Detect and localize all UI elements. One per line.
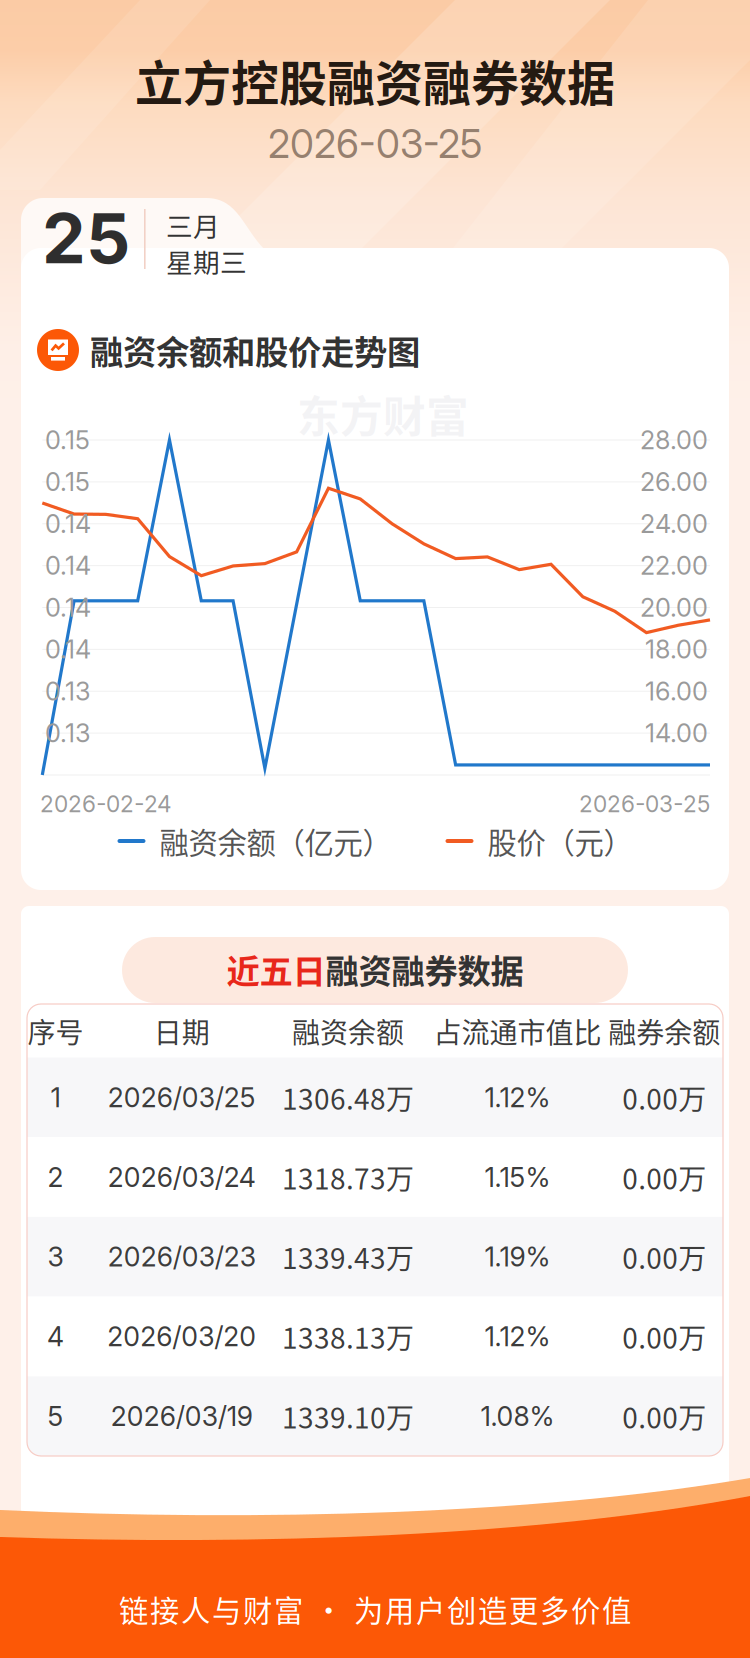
staticText: 1318.73万 — [282, 1157, 414, 1197]
staticText: 日期 — [154, 1011, 210, 1051]
staticText: 2026/03/23 — [108, 1241, 256, 1273]
staticText: 0.14 — [45, 592, 91, 623]
staticText: 1.15% — [484, 1161, 550, 1193]
staticText: 链接人与财富 · 为用户创造更多价值 — [119, 1588, 631, 1630]
staticText: 融资余额 — [292, 1011, 404, 1051]
staticText: 14.00 — [645, 718, 708, 748]
staticText: 25 — [42, 196, 130, 280]
staticText: 0.13 — [45, 676, 91, 707]
staticText: 占流通市值比 — [433, 1011, 601, 1051]
staticText: 4 — [47, 1320, 64, 1353]
staticText: 26.00 — [640, 466, 708, 497]
staticText: 2026-03-25 — [268, 121, 482, 167]
staticText: 1338.13万 — [282, 1316, 414, 1357]
staticText: 0.00万 — [622, 1316, 706, 1357]
staticText: 18.00 — [645, 634, 708, 665]
staticText: 16.00 — [645, 676, 708, 707]
staticText: 0.15 — [45, 466, 90, 497]
staticText: 0.15 — [45, 425, 90, 455]
staticText: 1.08% — [480, 1400, 554, 1432]
staticText: 三月 — [166, 206, 220, 244]
staticText: 东方财富 — [297, 383, 469, 445]
staticText: 融资融券数据 — [325, 945, 523, 993]
staticText: 0.13 — [45, 718, 91, 748]
staticText: 5 — [47, 1400, 63, 1432]
staticText: 0.00万 — [622, 1396, 706, 1436]
staticText: 2026/03/25 — [108, 1081, 256, 1114]
staticText: 3 — [47, 1241, 63, 1273]
staticText: 近五日 — [226, 945, 325, 993]
staticText: 2026-03-25 — [579, 790, 710, 818]
staticText: 星期三 — [166, 242, 247, 280]
staticText: 融资余额（亿元） — [145, 820, 391, 862]
staticText: 0.00万 — [622, 1237, 706, 1277]
staticText: 1 — [50, 1081, 60, 1114]
staticText: 28.00 — [640, 425, 708, 455]
staticText: 1.19% — [484, 1241, 550, 1273]
staticText: 20.00 — [640, 592, 708, 623]
staticText: 股价（元） — [473, 820, 632, 862]
staticText: 0.14 — [45, 508, 91, 539]
staticText: 1.12% — [484, 1320, 550, 1353]
staticText: 0.14 — [45, 550, 91, 581]
staticText: 立方控股融资融券数据 — [135, 45, 615, 115]
staticText: 1339.43万 — [282, 1237, 414, 1277]
staticText: 24.00 — [640, 508, 708, 539]
staticText: 1339.10万 — [282, 1396, 414, 1436]
staticText: 22.00 — [640, 550, 708, 581]
staticText: 1.12% — [484, 1081, 550, 1114]
staticText: 融券余额 — [608, 1011, 720, 1051]
staticText: 2026/03/19 — [111, 1400, 253, 1432]
staticText: 2026/03/24 — [108, 1161, 256, 1193]
staticText: 2 — [47, 1161, 63, 1193]
staticText: 序号 — [27, 1011, 83, 1051]
staticText: 2026/03/20 — [107, 1320, 256, 1353]
staticText: 融资余额和股价走势图 — [90, 326, 420, 374]
staticText: 0.00万 — [622, 1077, 706, 1118]
staticText: 0.14 — [45, 634, 91, 665]
staticText: 2026-02-24 — [40, 790, 172, 818]
staticText: 0.00万 — [622, 1157, 706, 1197]
staticText: 1306.48万 — [282, 1077, 414, 1118]
